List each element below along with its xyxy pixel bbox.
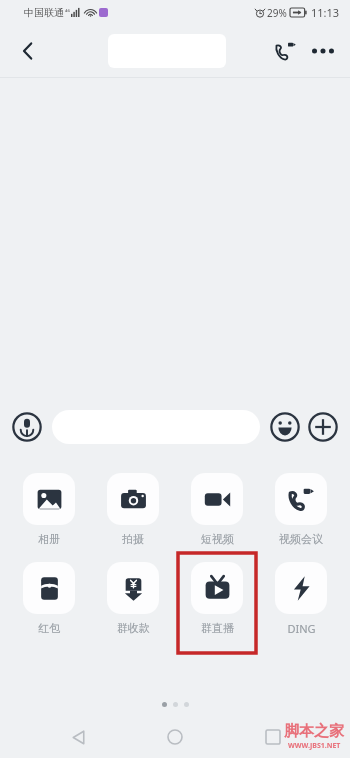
button[interactable]: Voice message [10, 410, 44, 444]
button[interactable] [275, 562, 327, 614]
button[interactable]: Back [8, 31, 48, 71]
staticText: 29% [267, 6, 287, 20]
button[interactable]: Home [155, 717, 195, 757]
button[interactable]: More options [304, 32, 342, 70]
button[interactable]: Recent apps [253, 717, 293, 757]
staticText: 短视频 [201, 532, 234, 546]
button[interactable] [107, 473, 159, 525]
button[interactable] [191, 562, 243, 614]
staticText: 脚本之家 [284, 722, 344, 741]
button[interactable] [275, 473, 327, 525]
staticText: 视频会议 [279, 532, 323, 546]
staticText: 11:13 [311, 5, 340, 20]
button[interactable] [23, 562, 75, 614]
staticText: 拍摄 [122, 532, 144, 546]
staticText: DING [287, 621, 316, 636]
button[interactable] [191, 473, 243, 525]
staticText: WWW.JBS1.NET [288, 741, 341, 751]
button[interactable]: Back [58, 717, 98, 757]
staticText: ⁴⁶ [65, 8, 70, 18]
staticText: 红包 [38, 621, 60, 635]
button[interactable] [107, 562, 159, 614]
button[interactable]: Emoji [268, 410, 302, 444]
staticText: 群直播 [201, 621, 234, 635]
staticText: 相册 [38, 532, 60, 546]
button[interactable]: More attachments [306, 410, 340, 444]
button[interactable] [23, 473, 75, 525]
button[interactable]: Video call [266, 32, 304, 70]
staticText: 中国联通 [24, 6, 64, 19]
staticText: 群收款 [117, 621, 150, 635]
